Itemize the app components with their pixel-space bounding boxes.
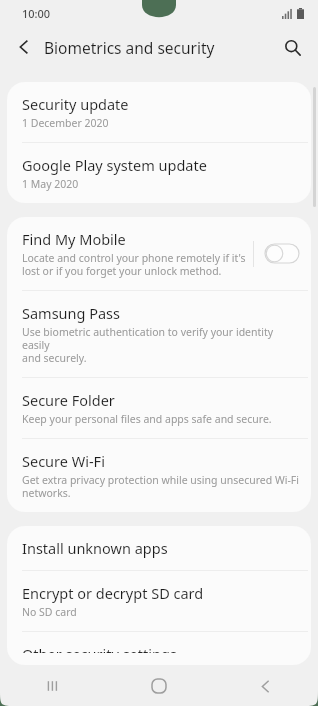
button[interactable]: Other security settings — [7, 632, 311, 665]
button[interactable]: Samsung Pass — [7, 291, 311, 377]
staticText: Find My Mobile — [22, 229, 126, 249]
staticText: Samsung Pass — [22, 303, 121, 323]
button[interactable]: Secure Folder — [7, 378, 311, 438]
staticText: Encrypt or decrypt SD card — [22, 583, 204, 603]
button[interactable]: Find My Mobile — [7, 217, 311, 290]
staticText: Biometrics and security — [44, 37, 215, 58]
button[interactable]: Install unknown apps — [7, 526, 311, 570]
staticText: Install unknown apps — [22, 538, 168, 558]
staticText: Secure Wi-Fi — [22, 451, 105, 471]
button[interactable]: Encrypt or decrypt SD card — [7, 571, 311, 631]
staticText: 1 May 2020 — [22, 177, 79, 191]
button[interactable]: Back — [8, 31, 40, 63]
staticText: 10:00 — [22, 6, 51, 21]
staticText: Secure Folder — [22, 390, 115, 410]
staticText: No SD card — [22, 605, 77, 619]
button[interactable]: Back — [245, 666, 285, 706]
staticText: Get extra privacy protection while using… — [22, 473, 299, 500]
button[interactable]: Secure Wi-Fi — [7, 439, 311, 512]
button[interactable]: Security update — [7, 82, 311, 142]
staticText: Use biometric authentication to verify y… — [22, 325, 299, 365]
button[interactable]: Google Play system update — [7, 143, 311, 203]
staticText: 1 December 2020 — [22, 116, 109, 130]
button[interactable]: Recent apps — [33, 666, 73, 706]
staticText: Locate and control your phone remotely i… — [22, 251, 246, 278]
button[interactable]: Home — [139, 666, 179, 706]
staticText: Google Play system update — [22, 155, 207, 175]
button[interactable]: Search — [276, 31, 308, 63]
staticText: Keep your personal files and apps safe a… — [22, 412, 272, 426]
staticText: Security update — [22, 94, 129, 114]
staticText: Other security settings — [22, 644, 177, 653]
button[interactable]: Find My Mobile toggle — [265, 244, 299, 263]
